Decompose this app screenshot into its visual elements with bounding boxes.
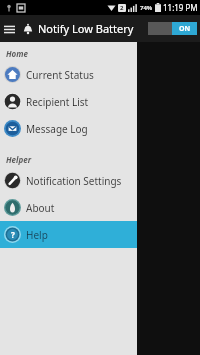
button[interactable]: Open navigation drawer (0, 20, 18, 38)
button[interactable]: Message Log (0, 115, 137, 142)
staticText: Current Status (26, 68, 94, 82)
staticText: List of phone numbers along with names, … (6, 162, 133, 195)
button[interactable]: Notify Low Battery on/off (148, 22, 197, 35)
staticText: ON (179, 24, 191, 34)
staticText: 2 (120, 4, 124, 12)
staticText: Notification Settings (26, 174, 122, 188)
staticText: 74% (140, 4, 153, 12)
staticText: Message Log (26, 122, 88, 136)
staticText: About (26, 201, 55, 215)
staticText: ? (11, 229, 15, 240)
button[interactable]: Recipient List (0, 88, 137, 115)
staticText: The current state of the battery level. (6, 120, 80, 142)
staticText: Notify Low Battery (38, 21, 134, 36)
staticText: 11:19 PM (163, 2, 198, 13)
button[interactable]: ? (0, 221, 137, 248)
button[interactable]: About (0, 194, 137, 221)
staticText: Recipient List (26, 95, 89, 109)
button[interactable]: Current Status (0, 61, 137, 88)
staticText: Help (26, 228, 48, 242)
staticText: Home (6, 48, 28, 59)
button[interactable]: Notification Settings (0, 167, 137, 194)
staticText: Helper (6, 154, 32, 165)
